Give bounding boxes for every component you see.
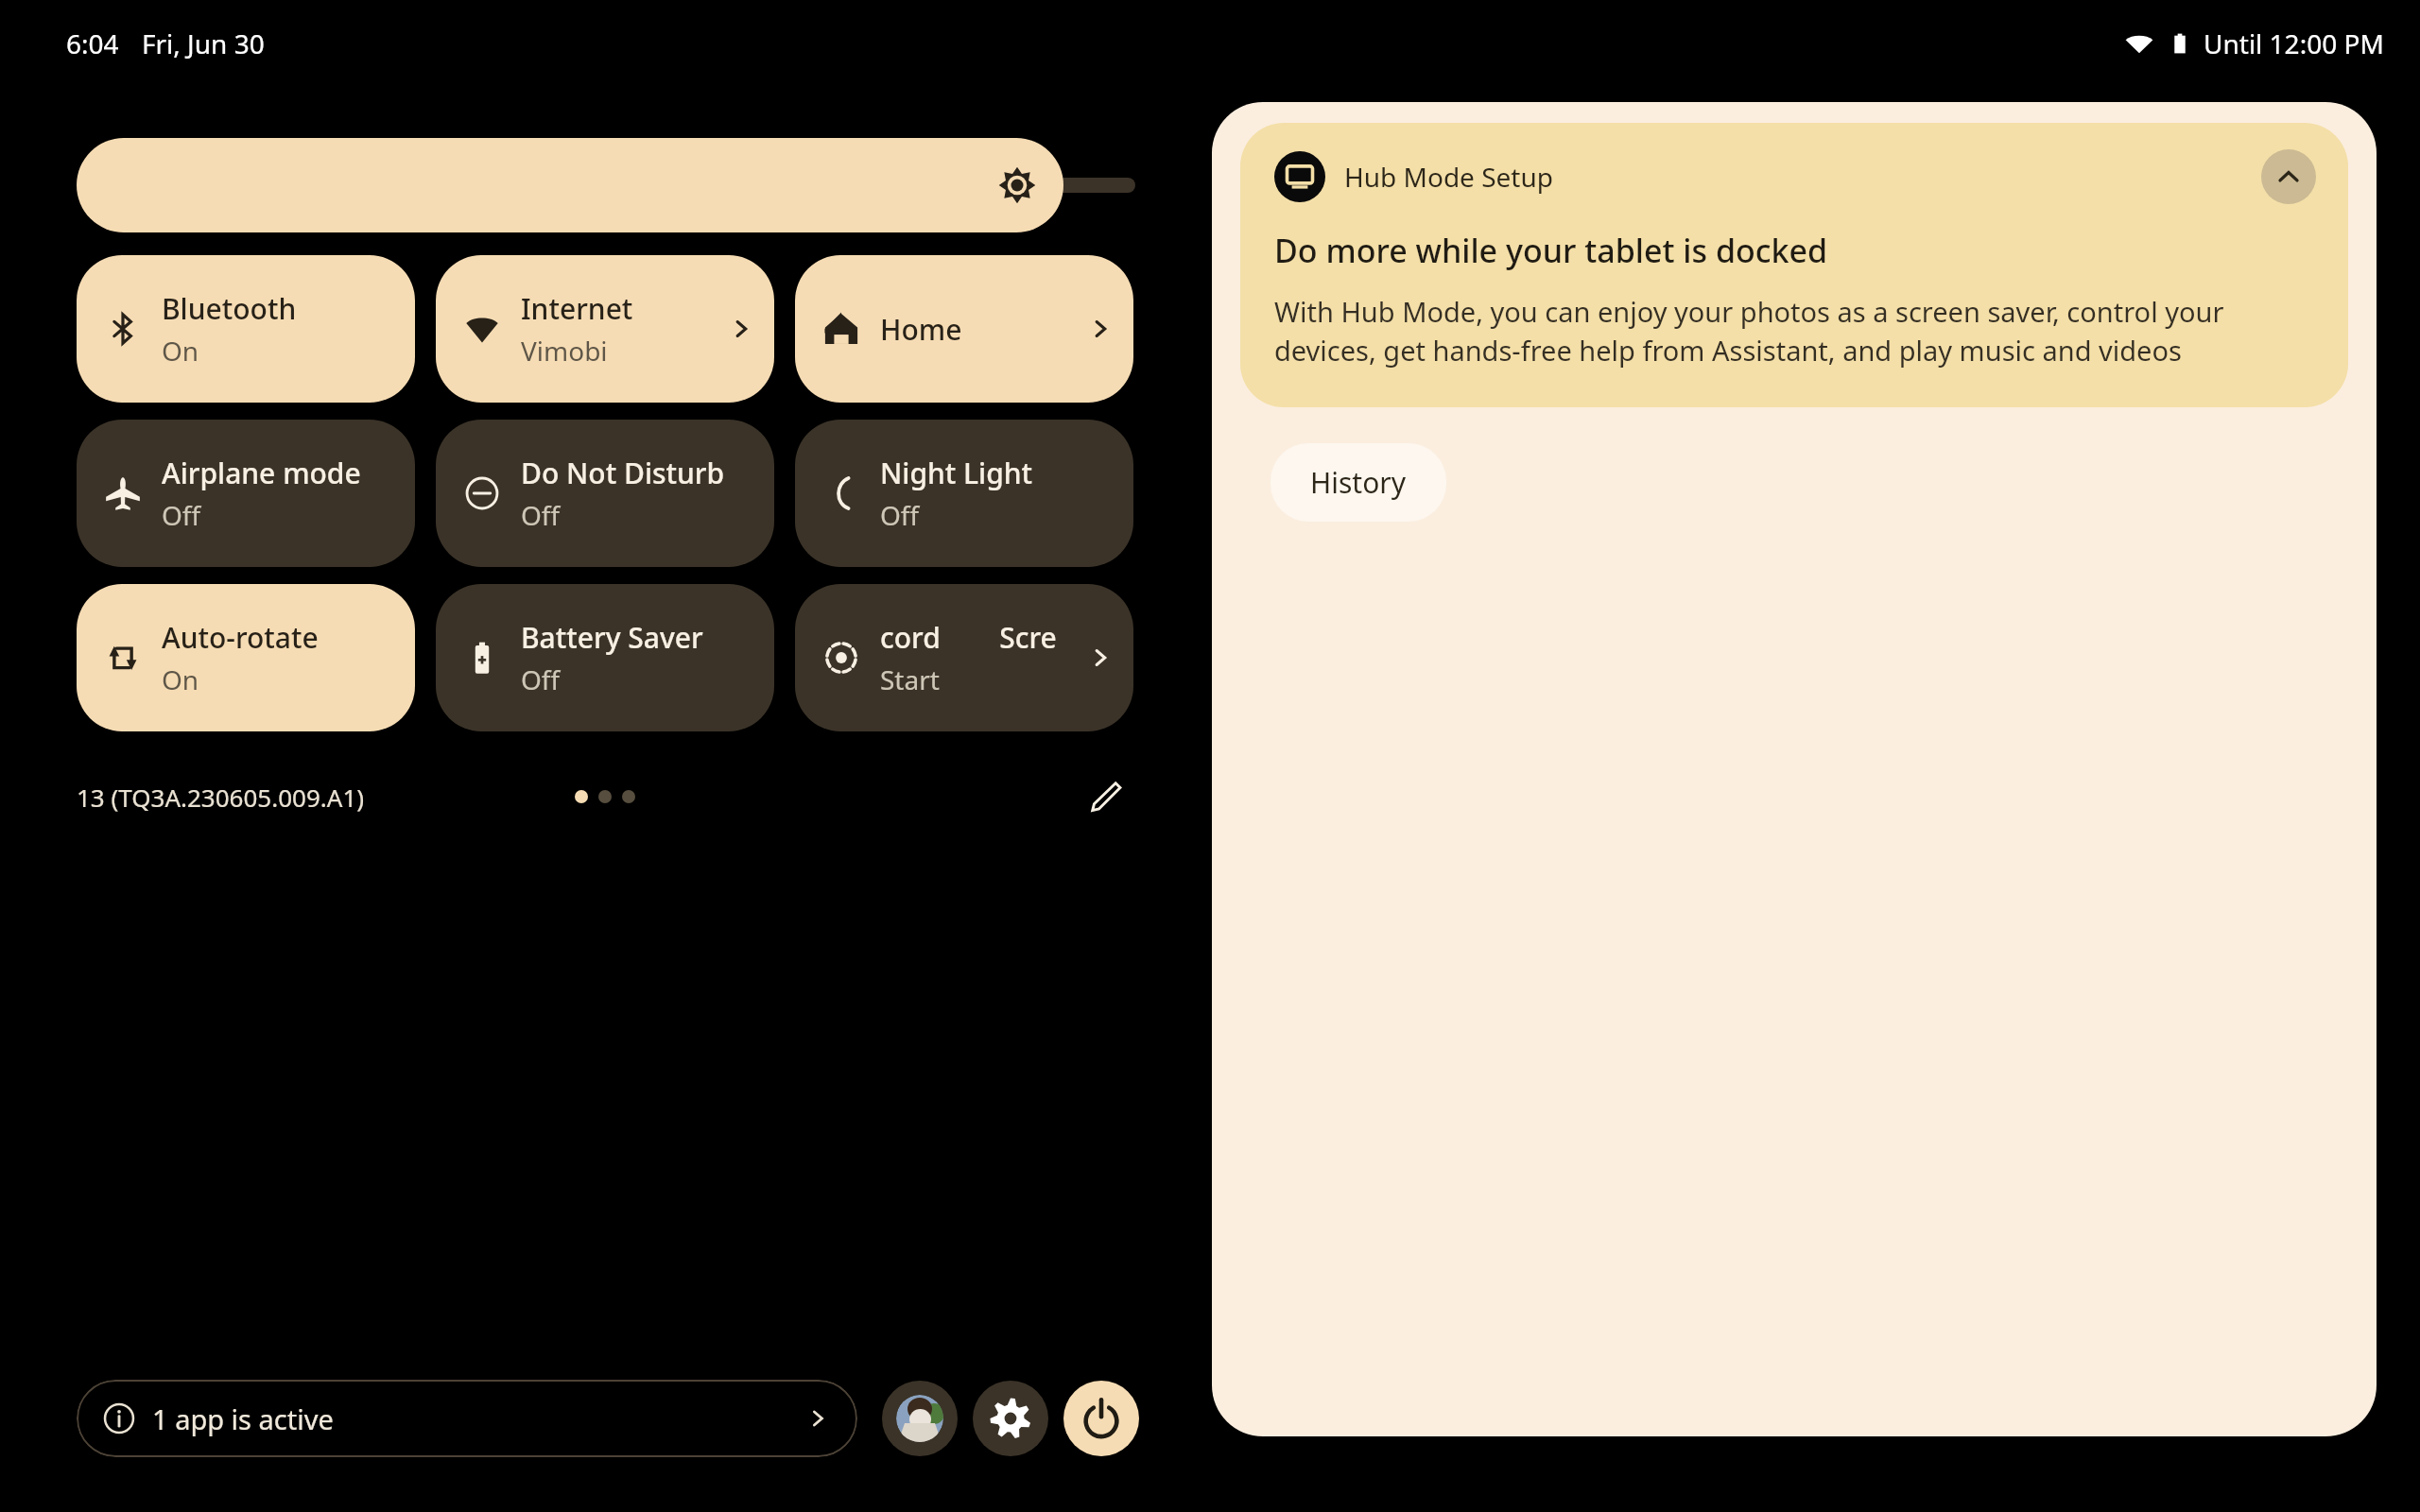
staticText: Internet	[521, 289, 633, 328]
staticText: On	[162, 661, 199, 697]
staticText: Fri, Jun 30	[142, 26, 265, 61]
staticText: Night Light	[880, 454, 1033, 492]
button[interactable]: Edit tiles	[1079, 769, 1133, 824]
button[interactable]: Auto-rotate	[77, 584, 415, 731]
staticText: Do Not Disturb	[521, 454, 725, 492]
staticText: On	[162, 333, 199, 369]
staticText: Off	[521, 661, 561, 697]
button[interactable]: Bluetooth	[77, 255, 415, 403]
button[interactable]: 1 app is active	[77, 1380, 857, 1457]
button[interactable]: Airplane mode	[77, 420, 415, 567]
staticText: Battery Saver	[521, 618, 703, 657]
staticText: Home	[880, 310, 962, 349]
staticText: Off	[162, 497, 201, 533]
staticText: cord Scre	[880, 618, 1057, 657]
button[interactable]: Battery Saver	[436, 584, 774, 731]
button[interactable]: User profile	[882, 1381, 958, 1456]
button[interactable]: Hub Mode Setup	[1240, 123, 2348, 407]
staticText: Vimobi	[521, 333, 608, 369]
button[interactable]: History	[1270, 443, 1446, 522]
staticText: Off	[880, 497, 920, 533]
button[interactable]: Home	[795, 255, 1133, 403]
staticText: With Hub Mode, you can enjoy your photos…	[1274, 293, 2316, 369]
button[interactable]: Internet	[436, 255, 774, 403]
staticText: 13 (TQ3A.230605.009.A1)	[77, 781, 365, 814]
staticText: Off	[521, 497, 561, 533]
button[interactable]: Settings	[973, 1381, 1048, 1456]
staticText: Bluetooth	[162, 289, 297, 328]
staticText: Auto-rotate	[162, 618, 319, 657]
staticText: Airplane mode	[162, 454, 361, 492]
staticText: Until 12:00 PM	[2204, 26, 2384, 61]
button[interactable]: Do Not Disturb	[436, 420, 774, 567]
button[interactable]: Power	[1063, 1381, 1139, 1456]
button[interactable]: cord Scre	[795, 584, 1133, 731]
staticText: History	[1310, 463, 1407, 502]
staticText: Do more while your tablet is docked	[1274, 229, 1828, 272]
button[interactable]: Night Light	[795, 420, 1133, 567]
button[interactable]: Brightness	[77, 138, 1063, 232]
button[interactable]: Collapse notification	[2261, 149, 2316, 204]
staticText: 1 app is active	[152, 1400, 804, 1437]
staticText: Hub Mode Setup	[1344, 159, 1553, 195]
staticText: 6:04	[66, 26, 119, 61]
staticText: Start	[880, 661, 940, 697]
